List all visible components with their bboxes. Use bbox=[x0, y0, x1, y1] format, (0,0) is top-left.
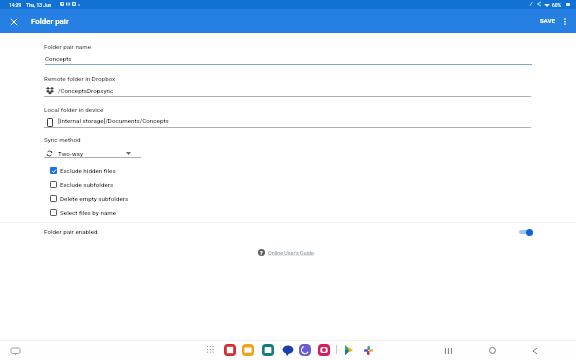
button[interactable]: Hide keyboard bbox=[7, 343, 23, 359]
button[interactable]: Add app bbox=[362, 344, 374, 356]
button[interactable]: SAVE bbox=[536, 13, 560, 29]
staticText: SAVE bbox=[540, 18, 556, 25]
staticText: Online User's Guide bbox=[268, 250, 314, 256]
button[interactable]: Messages bbox=[280, 343, 295, 358]
staticText: Select files by name bbox=[60, 209, 117, 216]
button[interactable] bbox=[44, 163, 204, 177]
staticText: 60% bbox=[552, 2, 562, 8]
staticText: Local folder in device bbox=[44, 106, 104, 113]
button[interactable]: Files bbox=[240, 343, 255, 358]
button[interactable]: Close bbox=[5, 13, 22, 30]
button[interactable]: Keep bbox=[222, 343, 237, 358]
staticText: Folder pair name bbox=[44, 43, 92, 50]
button[interactable]: Back bbox=[525, 341, 545, 360]
button[interactable]: Apps bbox=[204, 343, 217, 356]
staticText: Folder pair bbox=[31, 17, 69, 26]
button[interactable]: Play Store bbox=[343, 344, 355, 356]
button[interactable]: ? bbox=[258, 249, 314, 256]
staticText: 14:29 bbox=[9, 2, 22, 8]
staticText: Concepts bbox=[45, 55, 72, 62]
button[interactable]: Folder pair enabled bbox=[515, 227, 537, 239]
staticText: [Internal storage]/Documents/Concepts bbox=[58, 117, 169, 124]
button[interactable] bbox=[44, 205, 204, 219]
staticText: ? bbox=[260, 250, 263, 256]
staticText: Thu, 13 Jun bbox=[26, 2, 52, 8]
staticText: Two-way bbox=[58, 150, 83, 157]
button[interactable]: Home bbox=[482, 341, 502, 360]
staticText: Exclude hidden files bbox=[60, 167, 116, 174]
button[interactable]: Calendar bbox=[260, 343, 275, 358]
button[interactable]: More options bbox=[556, 12, 574, 30]
staticText: Delete empty subfolders bbox=[60, 195, 129, 202]
staticText: /ConceptsDropsync bbox=[58, 87, 114, 94]
button[interactable]: Camera bbox=[316, 343, 331, 358]
staticText: Remote folder in Dropbox bbox=[44, 75, 116, 82]
button[interactable]: Recents bbox=[438, 341, 458, 360]
button[interactable]: Browser bbox=[297, 343, 312, 358]
button[interactable] bbox=[44, 191, 204, 205]
button[interactable]: Sync method bbox=[44, 147, 141, 159]
staticText: Folder pair enabled bbox=[44, 228, 98, 235]
button[interactable]: Folder pair enabled bbox=[0, 224, 576, 240]
staticText: Sync method bbox=[44, 136, 81, 143]
button[interactable] bbox=[44, 177, 204, 191]
staticText: Exclude subfolders bbox=[60, 181, 114, 188]
